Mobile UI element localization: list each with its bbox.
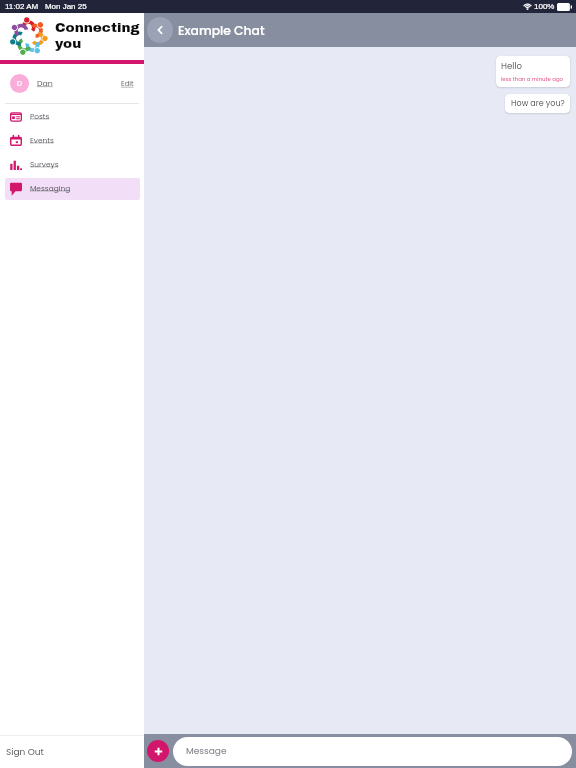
staticText: Hello bbox=[501, 60, 523, 72]
staticText: less than a minute ago bbox=[501, 75, 564, 83]
staticText: Surveys bbox=[30, 159, 59, 169]
staticText: Edit bbox=[121, 79, 134, 89]
staticText: How are you? bbox=[511, 98, 565, 109]
staticText: Messaging bbox=[30, 183, 71, 193]
button[interactable]: Message bbox=[173, 737, 572, 766]
button[interactable]: Add attachment bbox=[147, 740, 169, 762]
staticText: 11:02 AM Mon Jan 25 bbox=[5, 2, 87, 11]
button[interactable]: Hello bbox=[496, 56, 570, 87]
button[interactable]: Surveys bbox=[5, 154, 140, 176]
staticText: Connecting you bbox=[55, 20, 140, 50]
button[interactable]: How are you? bbox=[505, 94, 570, 113]
staticText: Dan bbox=[37, 78, 53, 89]
button[interactable]: Sign Out bbox=[0, 736, 144, 768]
button[interactable]: D bbox=[0, 64, 144, 103]
button[interactable]: Messaging bbox=[5, 178, 140, 200]
button[interactable]: Events bbox=[5, 130, 140, 152]
staticText: 100% bbox=[534, 2, 555, 11]
staticText: D bbox=[17, 79, 22, 89]
staticText: Example Chat bbox=[178, 22, 265, 39]
staticText: Posts bbox=[30, 111, 50, 121]
staticText: Sign Out bbox=[6, 746, 44, 759]
staticText: Events bbox=[30, 135, 54, 145]
staticText: Message bbox=[186, 745, 227, 758]
button[interactable]: Back bbox=[147, 17, 173, 43]
button[interactable]: Posts bbox=[5, 106, 140, 128]
